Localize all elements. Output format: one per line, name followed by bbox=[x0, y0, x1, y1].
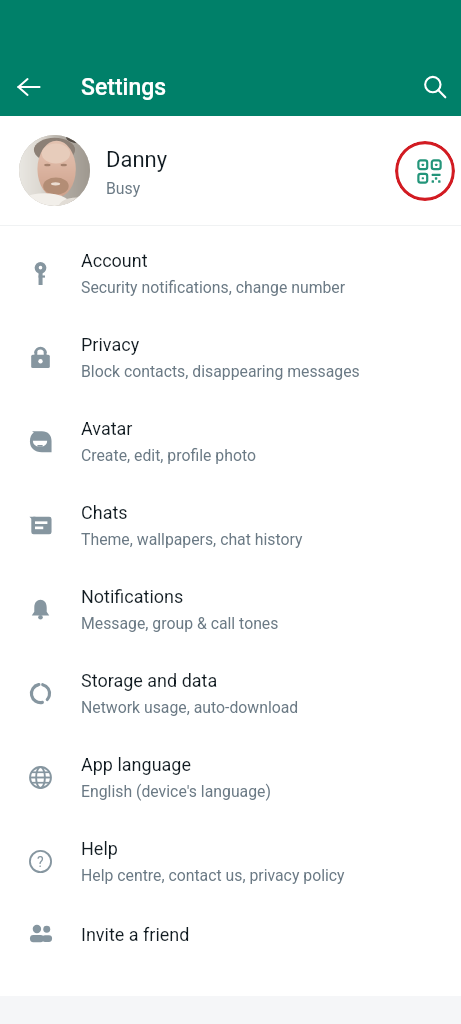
button[interactable]: Avatar bbox=[0, 399, 461, 483]
staticText: Danny bbox=[106, 147, 168, 173]
button[interactable]: Invite a friend bbox=[0, 903, 461, 965]
button[interactable]: Chats bbox=[0, 483, 461, 567]
staticText: Storage and data bbox=[81, 670, 218, 691]
staticText: Network usage, auto-download bbox=[81, 698, 299, 717]
staticText: App language bbox=[81, 754, 192, 775]
staticText: Privacy bbox=[81, 334, 140, 355]
staticText: Block contacts, disappearing messages bbox=[81, 362, 360, 381]
staticText: Busy bbox=[106, 179, 141, 198]
staticText: Notifications bbox=[81, 586, 184, 607]
staticText: Invite a friend bbox=[81, 924, 190, 945]
staticText: Security notifications, change number bbox=[81, 278, 346, 297]
button[interactable]: Danny bbox=[0, 116, 461, 225]
staticText: Message, group & call tones bbox=[81, 614, 279, 633]
button[interactable]: Back bbox=[3, 61, 55, 113]
button[interactable]: QR code bbox=[395, 141, 455, 201]
button[interactable]: Notifications bbox=[0, 567, 461, 651]
staticText: Chats bbox=[81, 502, 128, 523]
staticText: Create, edit, profile photo bbox=[81, 446, 256, 465]
button[interactable]: Account bbox=[0, 231, 461, 315]
staticText: English (device's language) bbox=[81, 782, 271, 801]
staticText: Avatar bbox=[81, 418, 133, 439]
staticText: Account bbox=[81, 250, 148, 271]
button[interactable]: Privacy bbox=[0, 315, 461, 399]
staticText: Theme, wallpapers, chat history bbox=[81, 530, 303, 549]
staticText: Settings bbox=[81, 74, 167, 101]
button[interactable]: Storage and data bbox=[0, 651, 461, 735]
staticText: Help bbox=[81, 838, 118, 859]
button[interactable]: Search bbox=[409, 61, 461, 113]
staticText: ? bbox=[37, 854, 44, 870]
button[interactable]: App language bbox=[0, 735, 461, 819]
button[interactable]: ? bbox=[0, 819, 461, 903]
staticText: Help centre, contact us, privacy policy bbox=[81, 866, 345, 885]
